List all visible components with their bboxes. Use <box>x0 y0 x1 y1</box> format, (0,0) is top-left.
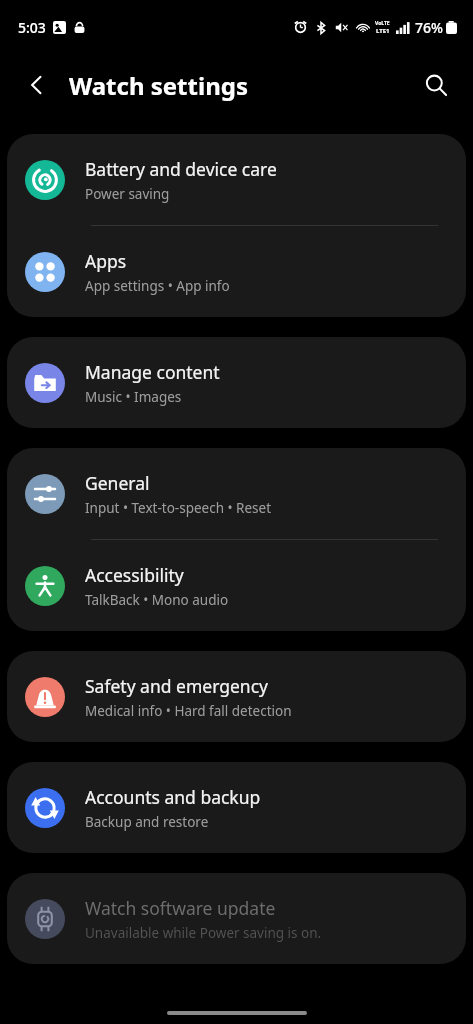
button[interactable]: Accounts and backup <box>7 762 466 853</box>
staticText: Manage content <box>85 360 220 384</box>
staticText: 5:03 <box>18 18 46 37</box>
button[interactable]: General <box>7 448 466 539</box>
staticText: Medical info • Hard fall detection <box>85 702 292 720</box>
button[interactable]: Accessibility <box>7 540 466 631</box>
staticText: General <box>85 471 150 495</box>
staticText: Unavailable while Power saving is on. <box>85 924 322 942</box>
button[interactable]: Battery and device care <box>7 134 466 225</box>
staticText: Watch settings <box>69 69 248 102</box>
staticText: App settings • App info <box>85 277 230 295</box>
staticText: TalkBack • Mono audio <box>85 591 229 609</box>
button[interactable]: Manage content <box>7 337 466 428</box>
staticText: Accessibility <box>85 563 184 587</box>
staticText: Apps <box>85 249 127 273</box>
staticText: Battery and device care <box>85 157 277 181</box>
staticText: Accounts and backup <box>85 785 261 809</box>
staticText: LTE1 <box>376 27 390 35</box>
staticText: Music • Images <box>85 388 182 406</box>
staticText: 76% <box>415 18 443 37</box>
staticText: Input • Text-to-speech • Reset <box>85 499 272 517</box>
staticText: Watch software update <box>85 896 276 920</box>
button[interactable]: Watch software update <box>7 873 466 964</box>
button[interactable]: Apps <box>7 226 466 317</box>
staticText: Backup and restore <box>85 813 209 831</box>
button[interactable]: Search <box>413 62 459 108</box>
staticText: Safety and emergency <box>85 674 268 698</box>
staticText: Power saving <box>85 185 170 203</box>
staticText: VoLTE <box>375 20 390 27</box>
button[interactable]: Back <box>14 62 60 108</box>
button[interactable]: Safety and emergency <box>7 651 466 742</box>
